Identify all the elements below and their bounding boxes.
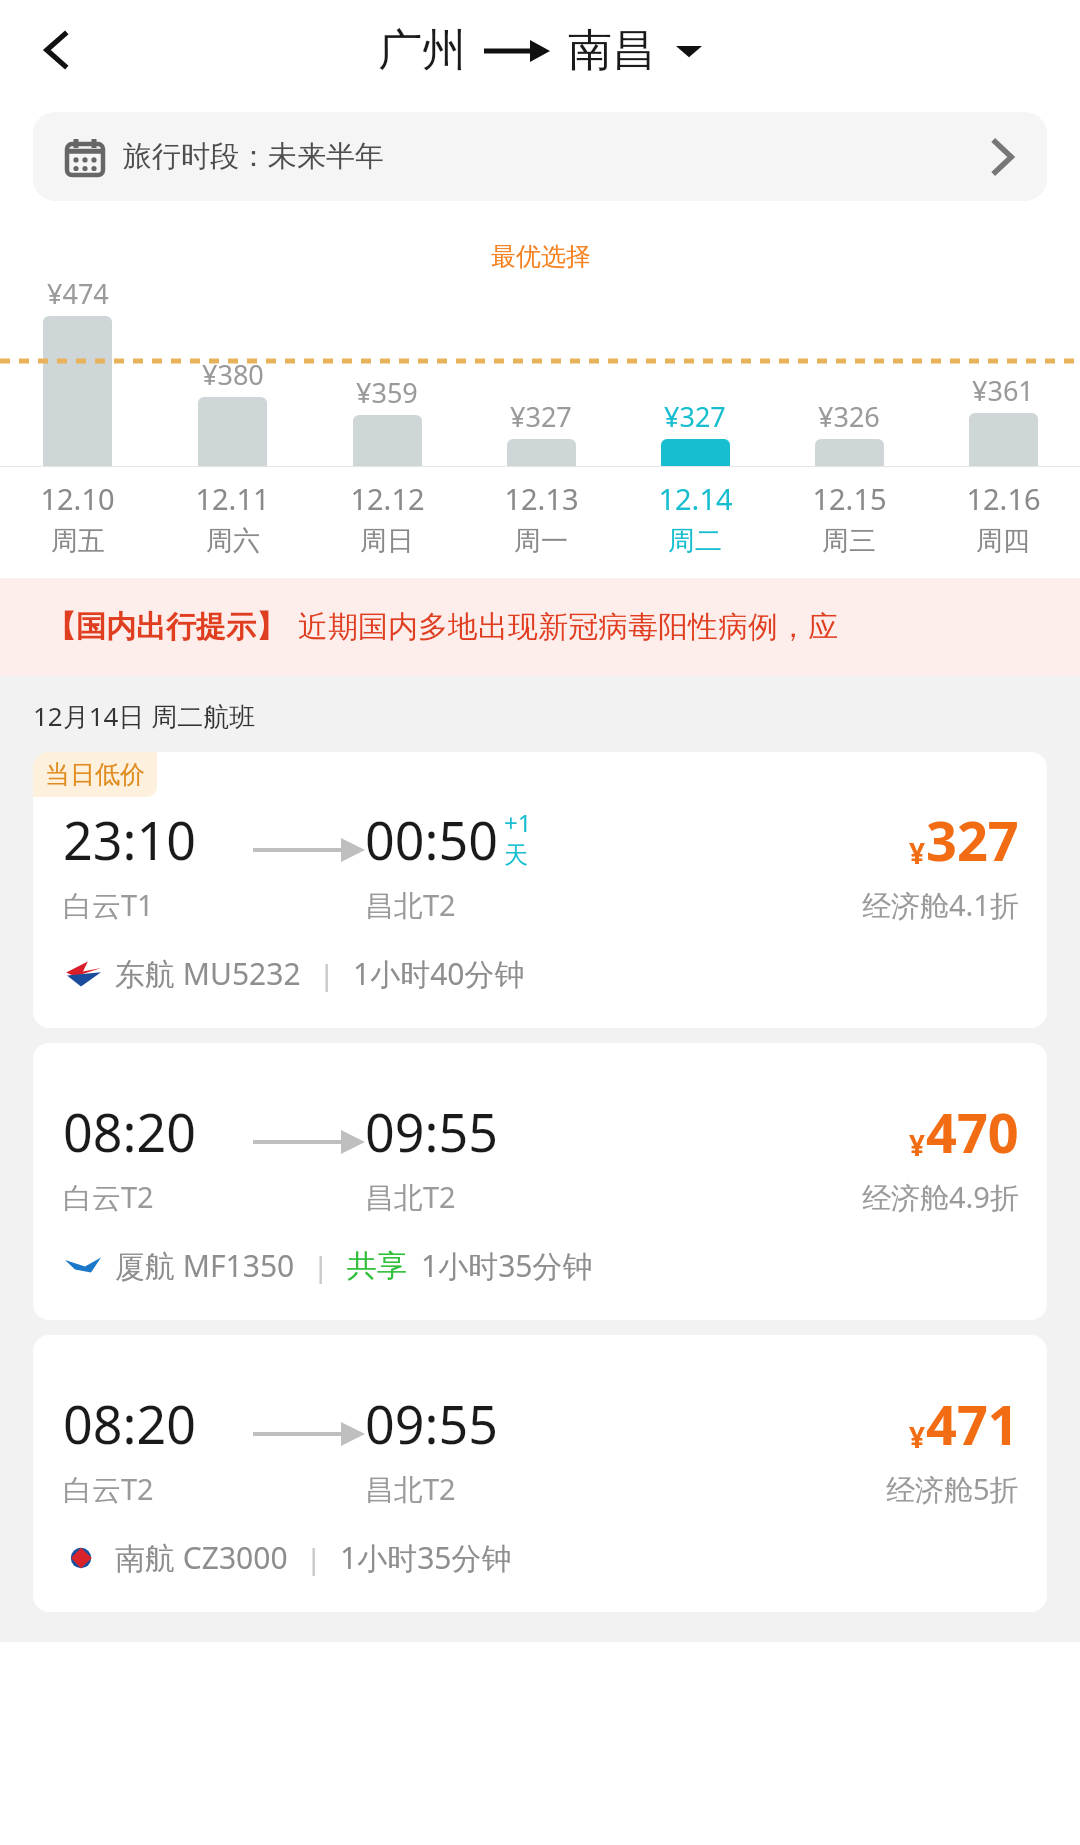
staticText: 470 <box>926 1095 1019 1169</box>
button[interactable]: 旅行时段：未来半年 <box>33 112 1047 201</box>
staticText: 12.15 <box>812 479 887 518</box>
staticText: 昌北T2 <box>365 1177 456 1217</box>
staticText: 经济舱5折 <box>886 1469 1019 1509</box>
staticText: 周六 <box>206 524 260 558</box>
staticText: 12.12 <box>350 479 425 518</box>
button[interactable]: ¥474 <box>0 275 155 466</box>
staticText: 12月14日 周二航班 <box>33 698 256 734</box>
button[interactable]: 08:20 <box>33 1335 1047 1612</box>
staticText: 经济舱4.1折 <box>862 885 1019 925</box>
staticText: 1小时40分钟 <box>353 953 525 994</box>
staticText: 共享 <box>347 1247 407 1285</box>
staticText: 南航 CZ3000 <box>115 1537 288 1578</box>
staticText: 12.11 <box>195 479 270 518</box>
staticText: 12.16 <box>966 479 1041 518</box>
staticText: ¥380 <box>202 356 264 393</box>
button[interactable]: ¥380 <box>155 356 310 466</box>
staticText: 周三 <box>822 524 876 558</box>
staticText: ¥359 <box>356 374 418 411</box>
staticText: 近期国内多地出现新冠病毒阳性病例，应 <box>298 608 838 646</box>
staticText: 周一 <box>514 524 568 558</box>
button[interactable]: 12.12 <box>310 479 464 558</box>
staticText: 12.14 <box>658 479 733 518</box>
button[interactable]: 12.16 <box>926 479 1080 558</box>
staticText: 12.10 <box>40 479 115 518</box>
button[interactable]: ¥327 <box>618 398 772 466</box>
staticText: 昌北T2 <box>365 885 456 925</box>
staticText: 白云T2 <box>63 1177 154 1217</box>
button[interactable]: 12.15 <box>772 479 926 558</box>
staticText: 南昌 <box>568 23 656 78</box>
staticText: 白云T1 <box>63 885 154 925</box>
staticText: 最优选择 <box>491 241 591 272</box>
staticText: | <box>319 955 335 993</box>
staticText: 当日低价 <box>45 759 145 790</box>
button[interactable]: 广州 <box>378 23 702 78</box>
staticText: +1天 <box>504 806 555 870</box>
staticText: 广州 <box>378 23 466 78</box>
staticText: 【国内出行提示】 <box>46 608 286 646</box>
staticText: 1小时35分钟 <box>340 1537 512 1578</box>
staticText: ¥327 <box>664 398 726 435</box>
staticText: ¥ <box>909 1126 926 1164</box>
staticText: ¥ <box>909 834 926 872</box>
button[interactable]: ¥361 <box>926 372 1080 466</box>
staticText: 00:50 <box>365 804 498 875</box>
staticText: 周四 <box>976 524 1030 558</box>
staticText: 09:55 <box>365 1388 498 1459</box>
button[interactable]: 12.11 <box>155 479 310 558</box>
staticText: ¥327 <box>510 398 572 435</box>
staticText: ¥361 <box>972 372 1034 409</box>
button[interactable]: ¥326 <box>772 398 926 466</box>
staticText: ¥474 <box>47 275 109 312</box>
button[interactable]: 08:20 <box>33 1043 1047 1320</box>
staticText: 09:55 <box>365 1096 498 1167</box>
staticText: 1小时35分钟 <box>421 1245 593 1286</box>
staticText: 经济舱4.9折 <box>862 1177 1019 1217</box>
staticText: ¥ <box>909 1418 926 1456</box>
staticText: 周二 <box>668 524 722 558</box>
staticText: ¥326 <box>818 398 880 435</box>
button[interactable]: 12.13 <box>464 479 618 558</box>
staticText: 12.13 <box>504 479 579 518</box>
staticText: 周日 <box>360 524 414 558</box>
staticText: 23:10 <box>63 804 196 875</box>
button[interactable]: 12.10 <box>0 479 155 558</box>
staticText: 旅行时段：未来半年 <box>123 138 384 175</box>
staticText: 08:20 <box>63 1388 196 1459</box>
button[interactable]: 【国内出行提示】 <box>0 578 1080 676</box>
staticText: 327 <box>926 803 1019 877</box>
staticText: 白云T2 <box>63 1469 154 1509</box>
staticText: 昌北T2 <box>365 1469 456 1509</box>
staticText: 周五 <box>51 524 105 558</box>
staticText: 08:20 <box>63 1096 196 1167</box>
button[interactable]: 12.14 <box>618 479 772 558</box>
button[interactable]: 当日低价 <box>33 752 1047 1028</box>
staticText: 471 <box>926 1387 1019 1461</box>
button[interactable]: ¥327 <box>464 398 618 466</box>
button[interactable]: Back <box>22 14 94 86</box>
staticText: | <box>306 1539 322 1577</box>
staticText: | <box>313 1247 329 1285</box>
staticText: 厦航 MF1350 <box>115 1245 295 1286</box>
button[interactable]: ¥359 <box>310 374 464 466</box>
staticText: 东航 MU5232 <box>115 953 301 994</box>
